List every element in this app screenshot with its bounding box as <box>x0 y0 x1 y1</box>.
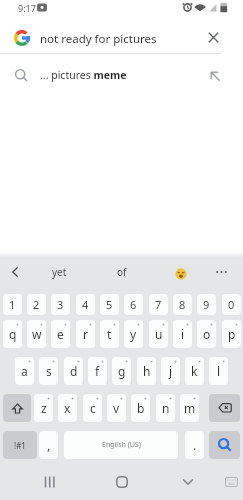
staticText: 3 <box>57 297 64 312</box>
button[interactable]: v <box>107 394 126 422</box>
button[interactable]: 5 <box>100 294 119 315</box>
button[interactable]: i <box>173 320 192 348</box>
staticText: !#1 <box>14 440 26 451</box>
button[interactable]: l <box>209 357 228 385</box>
staticText: x <box>64 400 71 416</box>
button[interactable]: 9 <box>197 294 216 315</box>
button[interactable]: , <box>39 431 58 459</box>
staticText: e <box>57 326 64 342</box>
button[interactable] <box>3 394 31 422</box>
button[interactable]: b <box>131 394 150 422</box>
staticText: k <box>191 363 198 379</box>
staticText: j <box>169 363 173 379</box>
button[interactable] <box>209 394 240 422</box>
button[interactable]: f <box>88 357 107 385</box>
button[interactable]: j <box>161 357 180 385</box>
staticText: 4 <box>82 297 89 312</box>
button[interactable]: . <box>185 431 204 459</box>
button[interactable] <box>9 266 21 278</box>
button[interactable]: 8 <box>173 294 192 315</box>
button[interactable]: yet <box>40 257 78 287</box>
button[interactable]: t <box>100 320 119 348</box>
button[interactable]: e <box>51 320 70 348</box>
button[interactable]: y <box>124 320 143 348</box>
button[interactable]: h <box>137 357 156 385</box>
staticText: not ready for pictures <box>40 31 157 47</box>
staticText: 7 <box>155 297 162 312</box>
button[interactable]: a <box>15 357 34 385</box>
staticText: . <box>193 437 197 453</box>
button[interactable]: English (US) <box>64 431 178 459</box>
staticText: c <box>90 400 96 416</box>
staticText: f <box>95 363 100 379</box>
staticText: z <box>41 400 47 416</box>
staticText: r <box>83 326 88 342</box>
staticText: 6 <box>130 297 137 312</box>
staticText: a <box>21 363 28 379</box>
staticText: i <box>181 326 185 342</box>
button[interactable] <box>175 268 187 280</box>
button[interactable]: u <box>149 320 168 348</box>
staticText: s <box>46 363 52 379</box>
button[interactable]: 4 <box>76 294 95 315</box>
button[interactable] <box>176 470 200 494</box>
staticText: 0 <box>228 297 235 312</box>
staticText: ... pictures meme <box>40 68 127 82</box>
button[interactable]: 6 <box>124 294 143 315</box>
staticText: 1 <box>9 297 16 312</box>
button[interactable] <box>219 470 243 494</box>
staticText: v <box>113 400 120 416</box>
button[interactable]: g <box>112 357 131 385</box>
button[interactable] <box>38 470 62 494</box>
staticText: 9:17 <box>18 2 36 14</box>
button[interactable]: 7 <box>149 294 168 315</box>
staticText: q <box>9 326 17 342</box>
staticText: o <box>203 326 211 342</box>
button[interactable]: x <box>58 394 77 422</box>
staticText: p <box>228 326 236 342</box>
button[interactable]: n <box>156 394 175 422</box>
button[interactable]: s <box>39 357 58 385</box>
button[interactable]: !#1 <box>3 431 37 459</box>
staticText: of <box>117 265 127 279</box>
button[interactable] <box>215 266 228 279</box>
staticText: , <box>47 437 51 453</box>
button[interactable]: o <box>197 320 216 348</box>
button[interactable]: d <box>64 357 83 385</box>
staticText: u <box>155 326 163 342</box>
button[interactable]: of <box>103 257 141 287</box>
button[interactable]: not ready for pictures <box>0 22 243 53</box>
button[interactable]: q <box>3 320 22 348</box>
button[interactable]: ... pictures meme <box>0 60 243 90</box>
staticText: l <box>217 363 221 379</box>
staticText: 2 <box>33 297 40 312</box>
button[interactable]: 0 <box>222 294 241 315</box>
staticText: g <box>118 363 126 379</box>
staticText: t <box>107 326 112 342</box>
staticText: n <box>162 400 170 416</box>
staticText: y <box>130 326 137 342</box>
staticText: b <box>137 400 145 416</box>
staticText: w <box>32 326 42 342</box>
staticText: yet <box>52 265 67 279</box>
staticText: 8 <box>179 297 186 312</box>
staticText: h <box>143 363 151 379</box>
button[interactable]: k <box>185 357 204 385</box>
button[interactable]: c <box>83 394 102 422</box>
staticText: English (US) <box>102 440 141 450</box>
staticText: 9 <box>203 297 210 312</box>
button[interactable]: r <box>76 320 95 348</box>
button[interactable] <box>110 470 134 494</box>
button[interactable] <box>209 431 240 459</box>
button[interactable]: p <box>222 320 241 348</box>
button[interactable]: w <box>27 320 46 348</box>
button[interactable]: 2 <box>27 294 46 315</box>
button[interactable]: m <box>180 394 199 422</box>
button[interactable]: z <box>34 394 53 422</box>
staticText: m <box>184 400 196 416</box>
staticText: d <box>70 363 78 379</box>
staticText: 5 <box>106 297 113 312</box>
button[interactable]: 3 <box>51 294 70 315</box>
button[interactable]: 1 <box>3 294 22 315</box>
